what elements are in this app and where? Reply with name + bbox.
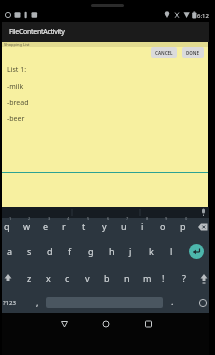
staticText: h [109, 245, 115, 257]
staticText: 6:12 [197, 12, 209, 20]
staticText: y [102, 220, 107, 232]
staticText: 6 [107, 216, 110, 221]
staticText: ! [162, 272, 165, 284]
staticText: -beer [7, 114, 25, 124]
staticText: d [47, 245, 53, 257]
staticText: 9 [165, 216, 168, 221]
staticText: CANCEL [155, 50, 173, 56]
staticText: w [23, 220, 31, 232]
staticText: Shopping List [4, 42, 30, 47]
staticText: p [180, 220, 186, 232]
staticText: j [129, 245, 132, 257]
staticText: . [171, 295, 174, 307]
staticText: 0 [185, 216, 188, 221]
staticText: t [82, 220, 86, 232]
staticText: e [43, 220, 49, 232]
staticText: n [124, 272, 130, 284]
staticText: z [27, 272, 32, 284]
staticText: b [104, 272, 110, 284]
staticText: DONE [186, 50, 200, 56]
staticText: 3 [48, 216, 51, 221]
staticText: r [62, 220, 66, 232]
staticText: , [36, 296, 39, 308]
staticText: 4 [67, 216, 70, 221]
staticText: f [68, 245, 72, 257]
staticText: q [4, 220, 10, 232]
staticText: 1 [9, 216, 12, 221]
staticText: ?123 [3, 299, 16, 307]
staticText: m [143, 272, 152, 284]
staticText: s [27, 245, 32, 257]
staticText: g [88, 245, 94, 257]
button[interactable] [0, 218, 215, 313]
staticText: List 1: [7, 65, 27, 75]
button[interactable]: CANCEL [151, 47, 177, 58]
staticText: -milk [7, 82, 24, 92]
staticText: 8 [146, 216, 149, 221]
staticText: v [85, 272, 90, 284]
button[interactable]: DONE [182, 47, 204, 58]
staticText: a [7, 245, 13, 257]
staticText: u [121, 220, 127, 232]
staticText: k [149, 245, 154, 257]
staticText: -bread [7, 98, 29, 108]
button[interactable] [189, 244, 204, 259]
staticText: 7 [126, 216, 129, 221]
staticText: l [170, 245, 173, 257]
staticText: c [65, 272, 70, 284]
staticText: o [160, 220, 166, 232]
staticText: 2 [28, 216, 31, 221]
staticText: FileContentActivity [9, 27, 65, 37]
staticText: 5 [87, 216, 90, 221]
staticText: ? [182, 272, 186, 284]
staticText: x [46, 272, 51, 284]
staticText: i [141, 220, 144, 232]
